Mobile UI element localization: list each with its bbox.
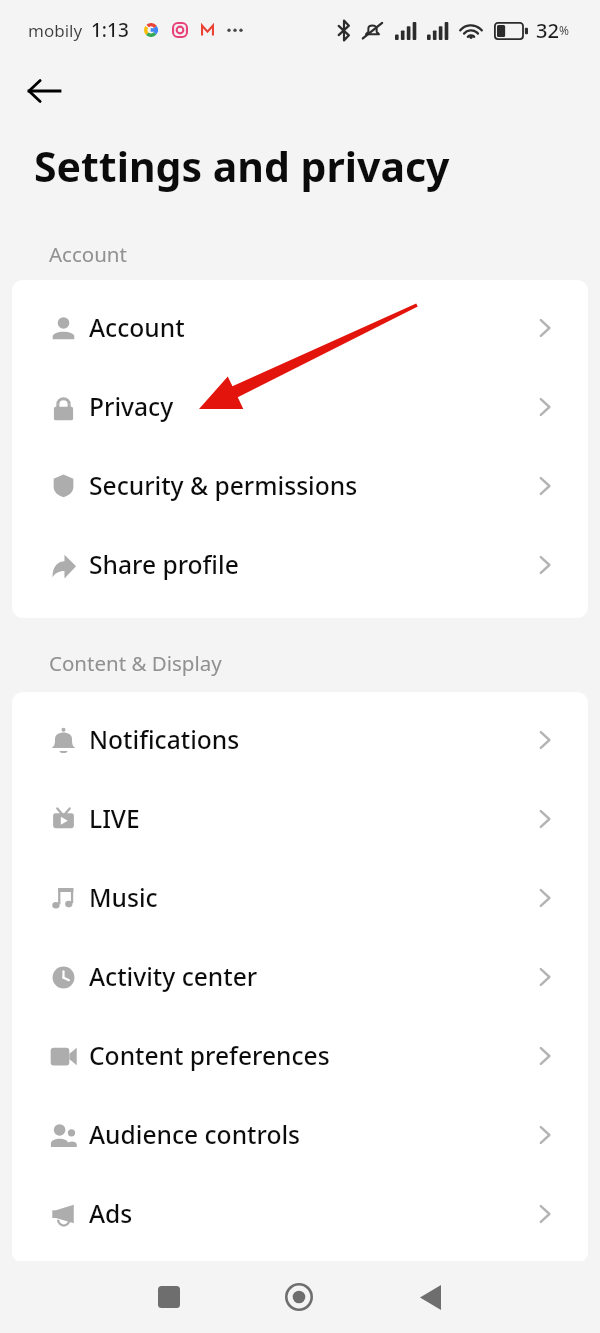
staticText: Security & permissions <box>89 469 358 503</box>
button[interactable]: Music <box>12 858 588 937</box>
staticText: Content & Display <box>49 649 222 677</box>
staticText: Share profile <box>89 548 239 582</box>
staticText: Account <box>49 240 127 268</box>
button[interactable]: Share profile <box>12 525 588 604</box>
button[interactable]: LIVE <box>12 779 588 858</box>
button[interactable]: Ads <box>12 1174 588 1253</box>
staticText: Settings and privacy <box>34 138 450 194</box>
button[interactable]: Back <box>395 1262 465 1332</box>
button[interactable]: Home <box>264 1262 334 1332</box>
staticText: Notifications <box>89 723 240 757</box>
staticText: Privacy <box>89 390 174 424</box>
button[interactable]: Account <box>12 288 588 367</box>
staticText: Account <box>89 311 185 345</box>
button[interactable]: Content preferences <box>12 1016 588 1095</box>
staticText: 32 <box>536 17 559 44</box>
staticText: % <box>559 22 569 38</box>
button[interactable]: Activity center <box>12 937 588 1016</box>
staticText: Activity center <box>89 960 258 994</box>
button[interactable]: Audience controls <box>12 1095 588 1174</box>
staticText: mobily <box>28 19 83 42</box>
button[interactable]: Privacy <box>12 367 588 446</box>
button[interactable]: Security & permissions <box>12 446 588 525</box>
staticText: Music <box>89 881 158 915</box>
staticText: 1:13 <box>91 17 129 43</box>
staticText: Audience controls <box>89 1118 301 1152</box>
staticText: Ads <box>89 1197 133 1231</box>
button[interactable]: Notifications <box>12 700 588 779</box>
button[interactable]: Back <box>16 63 72 119</box>
staticText: LIVE <box>89 802 140 836</box>
staticText: Content preferences <box>89 1039 330 1073</box>
button[interactable]: Recent apps <box>134 1262 204 1332</box>
